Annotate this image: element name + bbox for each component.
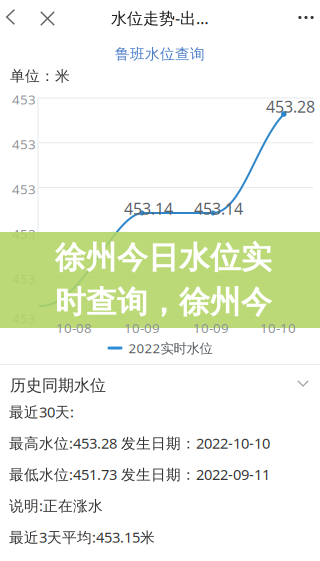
button[interactable]: 鲁班水位查询 (0, 36, 320, 67)
staticText: 最低水位:451.73 发生日期：2022-09-11 (9, 465, 270, 484)
staticText: 单位：米 (10, 67, 70, 85)
staticText: 说明:正在涨水 (9, 496, 103, 515)
staticText: 水位走势-出… (111, 7, 209, 29)
staticText: 徐州今日水位实 (55, 239, 272, 276)
staticText: 10-09 (193, 319, 229, 337)
button[interactable]: 历史同期水位 (0, 369, 320, 396)
staticText: 453 (12, 180, 36, 198)
staticText: 最近30天: (9, 402, 74, 421)
staticText: 10-08 (56, 319, 92, 337)
staticText: 453 (12, 135, 36, 153)
staticText: 453 (12, 309, 36, 327)
staticText: 10-09 (124, 319, 160, 337)
staticText: 时查询，徐州今 (55, 283, 272, 321)
staticText: 453 (12, 225, 36, 243)
staticText: 历史同期水位 (10, 375, 106, 395)
staticText: 453.14 (124, 198, 173, 219)
button[interactable]: More options (290, 1, 320, 33)
staticText: 2022实时水位 (128, 339, 212, 357)
staticText: 453 (12, 90, 36, 108)
staticText: 10-10 (260, 319, 296, 337)
button[interactable]: Close (33, 2, 61, 34)
staticText: 最高水位:453.28 发生日期：2022-10-10 (9, 433, 270, 453)
staticText: 453.28 (266, 96, 315, 117)
staticText: 453.14 (194, 198, 243, 219)
staticText: 453 (12, 270, 36, 287)
staticText: 最近3天平均:453.15米 (9, 527, 155, 547)
button[interactable]: Back (0, 1, 23, 33)
staticText: 鲁班水位查询 (115, 45, 205, 63)
